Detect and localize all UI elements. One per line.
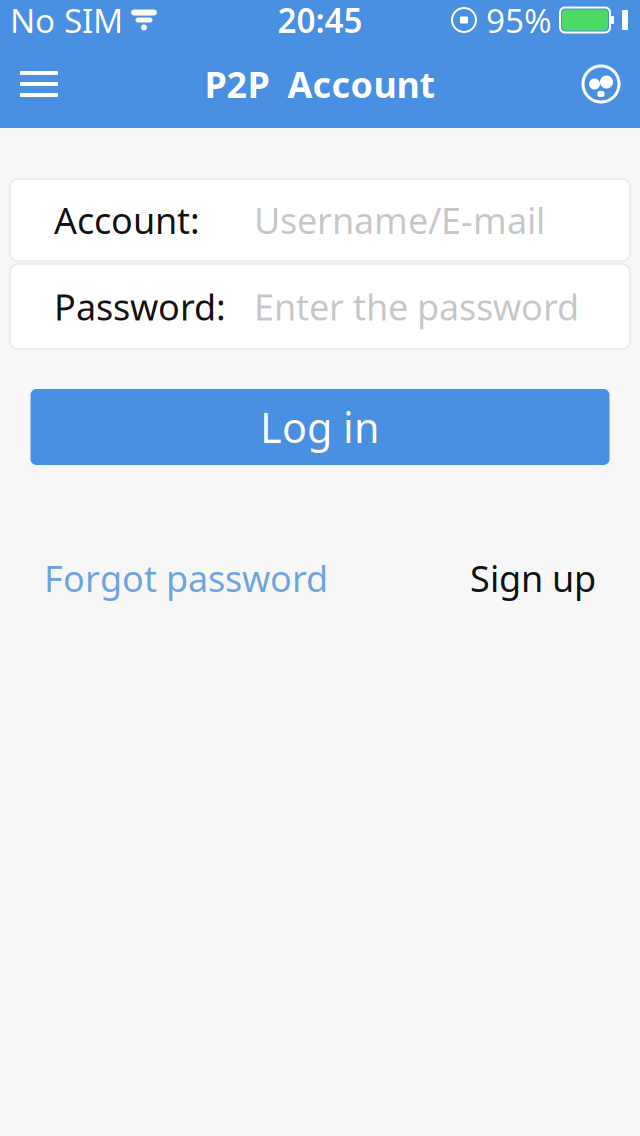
staticText: Account:	[54, 196, 200, 244]
staticText: P2P Account	[204, 60, 435, 108]
staticText: No SIM	[10, 0, 123, 42]
button[interactable]: Log in	[30, 389, 609, 465]
button[interactable]: Menu	[4, 49, 74, 119]
staticText: 20:45	[277, 0, 362, 42]
button[interactable]: Forgot password	[44, 554, 328, 602]
staticText: Username/E-mail	[254, 196, 545, 244]
staticText: Log in	[260, 400, 380, 454]
staticText: 95%	[486, 0, 552, 42]
button[interactable]: Sign up	[470, 554, 596, 602]
staticText: Forgot password	[44, 554, 328, 602]
button[interactable]: Language	[566, 49, 636, 119]
staticText: Sign up	[470, 554, 596, 602]
staticText: Password:	[54, 283, 226, 330]
staticText: Enter the password	[254, 283, 579, 330]
